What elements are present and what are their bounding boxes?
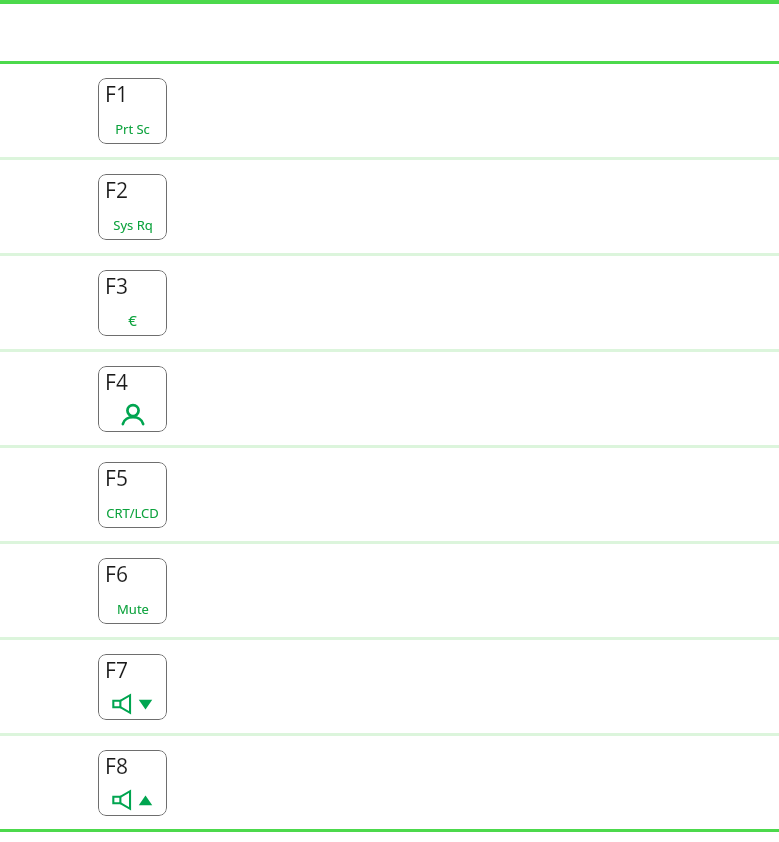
staticText: F5: [105, 464, 128, 493]
button[interactable]: F6 Mute: [98, 558, 167, 624]
staticText: F2: [105, 176, 128, 205]
button[interactable]: F5 CRT LCD display toggle: [98, 462, 167, 528]
staticText: F1: [105, 80, 128, 109]
button[interactable]: F2 System Request: [98, 174, 167, 240]
staticText: F3: [105, 272, 128, 301]
staticText: F8: [105, 752, 128, 781]
staticText: F7: [105, 656, 128, 685]
button[interactable]: F1 Print Screen: [98, 78, 167, 144]
staticText: CRT/LCD: [106, 504, 159, 522]
button[interactable]: F3 Euro symbol: [98, 270, 167, 336]
staticText: F6: [105, 560, 128, 589]
button[interactable]: F8 Volume up: [98, 750, 167, 816]
staticText: Sys Rq: [113, 216, 153, 234]
button[interactable]: F4 User: [98, 366, 167, 432]
staticText: F4: [105, 368, 128, 397]
staticText: €: [128, 310, 137, 330]
staticText: Prt Sc: [115, 120, 150, 138]
button[interactable]: F7 Volume down: [98, 654, 167, 720]
staticText: Mute: [117, 600, 149, 618]
